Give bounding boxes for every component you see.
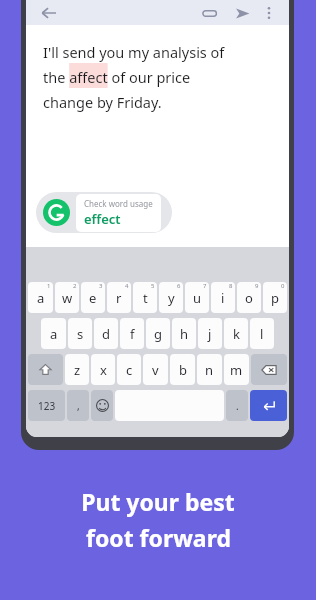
button[interactable]: y bbox=[159, 282, 183, 313]
staticText: r bbox=[116, 289, 122, 307]
staticText: 9 bbox=[255, 282, 259, 290]
button[interactable]: Backspace bbox=[251, 354, 287, 385]
button[interactable]: g bbox=[146, 318, 170, 349]
staticText: g bbox=[154, 325, 162, 343]
button[interactable]: x bbox=[91, 354, 115, 385]
staticText: Put your best bbox=[81, 486, 235, 517]
button[interactable]: Back bbox=[37, 1, 61, 25]
staticText: c bbox=[126, 361, 133, 379]
staticText: i bbox=[221, 289, 225, 307]
staticText: I'll send you my analysis of the affect … bbox=[43, 42, 225, 112]
button[interactable]: u bbox=[185, 282, 209, 313]
staticText: 6 bbox=[177, 282, 181, 290]
button[interactable]: v bbox=[143, 354, 168, 385]
button[interactable]: o bbox=[237, 282, 261, 313]
button[interactable]: a bbox=[41, 318, 66, 349]
button[interactable]: a bbox=[28, 282, 53, 313]
staticText: b bbox=[179, 361, 187, 379]
staticText: l bbox=[260, 325, 264, 343]
button[interactable]: n bbox=[197, 354, 222, 385]
button[interactable]: Attach file bbox=[197, 1, 221, 25]
staticText: v bbox=[152, 361, 159, 379]
staticText: a bbox=[37, 289, 45, 307]
staticText: 123 bbox=[38, 399, 56, 413]
staticText: 2 bbox=[73, 282, 77, 290]
staticText: y bbox=[168, 289, 175, 307]
staticText: u bbox=[193, 289, 202, 307]
staticText: w bbox=[62, 289, 73, 307]
staticText: e bbox=[89, 289, 97, 307]
staticText: j bbox=[208, 325, 212, 343]
staticText: 7 bbox=[203, 282, 207, 290]
button[interactable]: p bbox=[263, 282, 287, 313]
staticText: h bbox=[180, 325, 189, 343]
button[interactable]: Send bbox=[230, 1, 254, 25]
button[interactable]: 123 bbox=[28, 390, 65, 421]
button[interactable]: . bbox=[226, 390, 248, 421]
button[interactable]: , bbox=[67, 390, 89, 421]
button[interactable]: c bbox=[117, 354, 141, 385]
button[interactable]: r bbox=[107, 282, 131, 313]
button[interactable]: w bbox=[55, 282, 79, 313]
staticText: . bbox=[236, 399, 239, 413]
staticText: t bbox=[143, 289, 148, 307]
button[interactable]: k bbox=[224, 318, 248, 349]
button[interactable]: d bbox=[94, 318, 118, 349]
button[interactable]: e bbox=[81, 282, 105, 313]
button[interactable]: Emoji bbox=[91, 390, 113, 421]
staticText: foot forward bbox=[86, 522, 231, 553]
staticText: 1 bbox=[47, 282, 51, 290]
staticText: f bbox=[130, 325, 135, 343]
other: Grammarly bbox=[43, 199, 70, 226]
staticText: 3 bbox=[99, 282, 103, 290]
staticText: 0 bbox=[281, 282, 285, 290]
staticText: s bbox=[77, 325, 84, 343]
button[interactable]: z bbox=[65, 354, 89, 385]
staticText: p bbox=[271, 289, 279, 307]
staticText: d bbox=[102, 325, 110, 343]
staticText: m bbox=[230, 361, 243, 379]
staticText: z bbox=[74, 361, 81, 379]
staticText: , bbox=[77, 399, 80, 413]
button[interactable]: Enter bbox=[250, 390, 287, 421]
staticText: n bbox=[205, 361, 214, 379]
button[interactable]: s bbox=[68, 318, 92, 349]
button[interactable]: f bbox=[120, 318, 144, 349]
staticText: 5 bbox=[151, 282, 155, 290]
staticText: Check word usage bbox=[84, 198, 153, 209]
button[interactable]: j bbox=[198, 318, 222, 349]
staticText: 4 bbox=[125, 282, 129, 290]
staticText: k bbox=[233, 325, 240, 343]
button[interactable]: b bbox=[170, 354, 195, 385]
button[interactable]: m bbox=[224, 354, 249, 385]
staticText: 8 bbox=[229, 282, 233, 290]
button[interactable]: h bbox=[172, 318, 196, 349]
button[interactable]: Shift bbox=[28, 354, 63, 385]
button[interactable]: l bbox=[250, 318, 274, 349]
button[interactable]: t bbox=[133, 282, 157, 313]
staticText: x bbox=[100, 361, 107, 379]
button[interactable]: More options bbox=[259, 3, 279, 23]
staticText: a bbox=[50, 325, 58, 343]
staticText: o bbox=[245, 289, 253, 307]
button[interactable]: Grammarly bbox=[36, 192, 172, 233]
staticText: effect bbox=[84, 210, 121, 228]
button[interactable]: i bbox=[211, 282, 235, 313]
